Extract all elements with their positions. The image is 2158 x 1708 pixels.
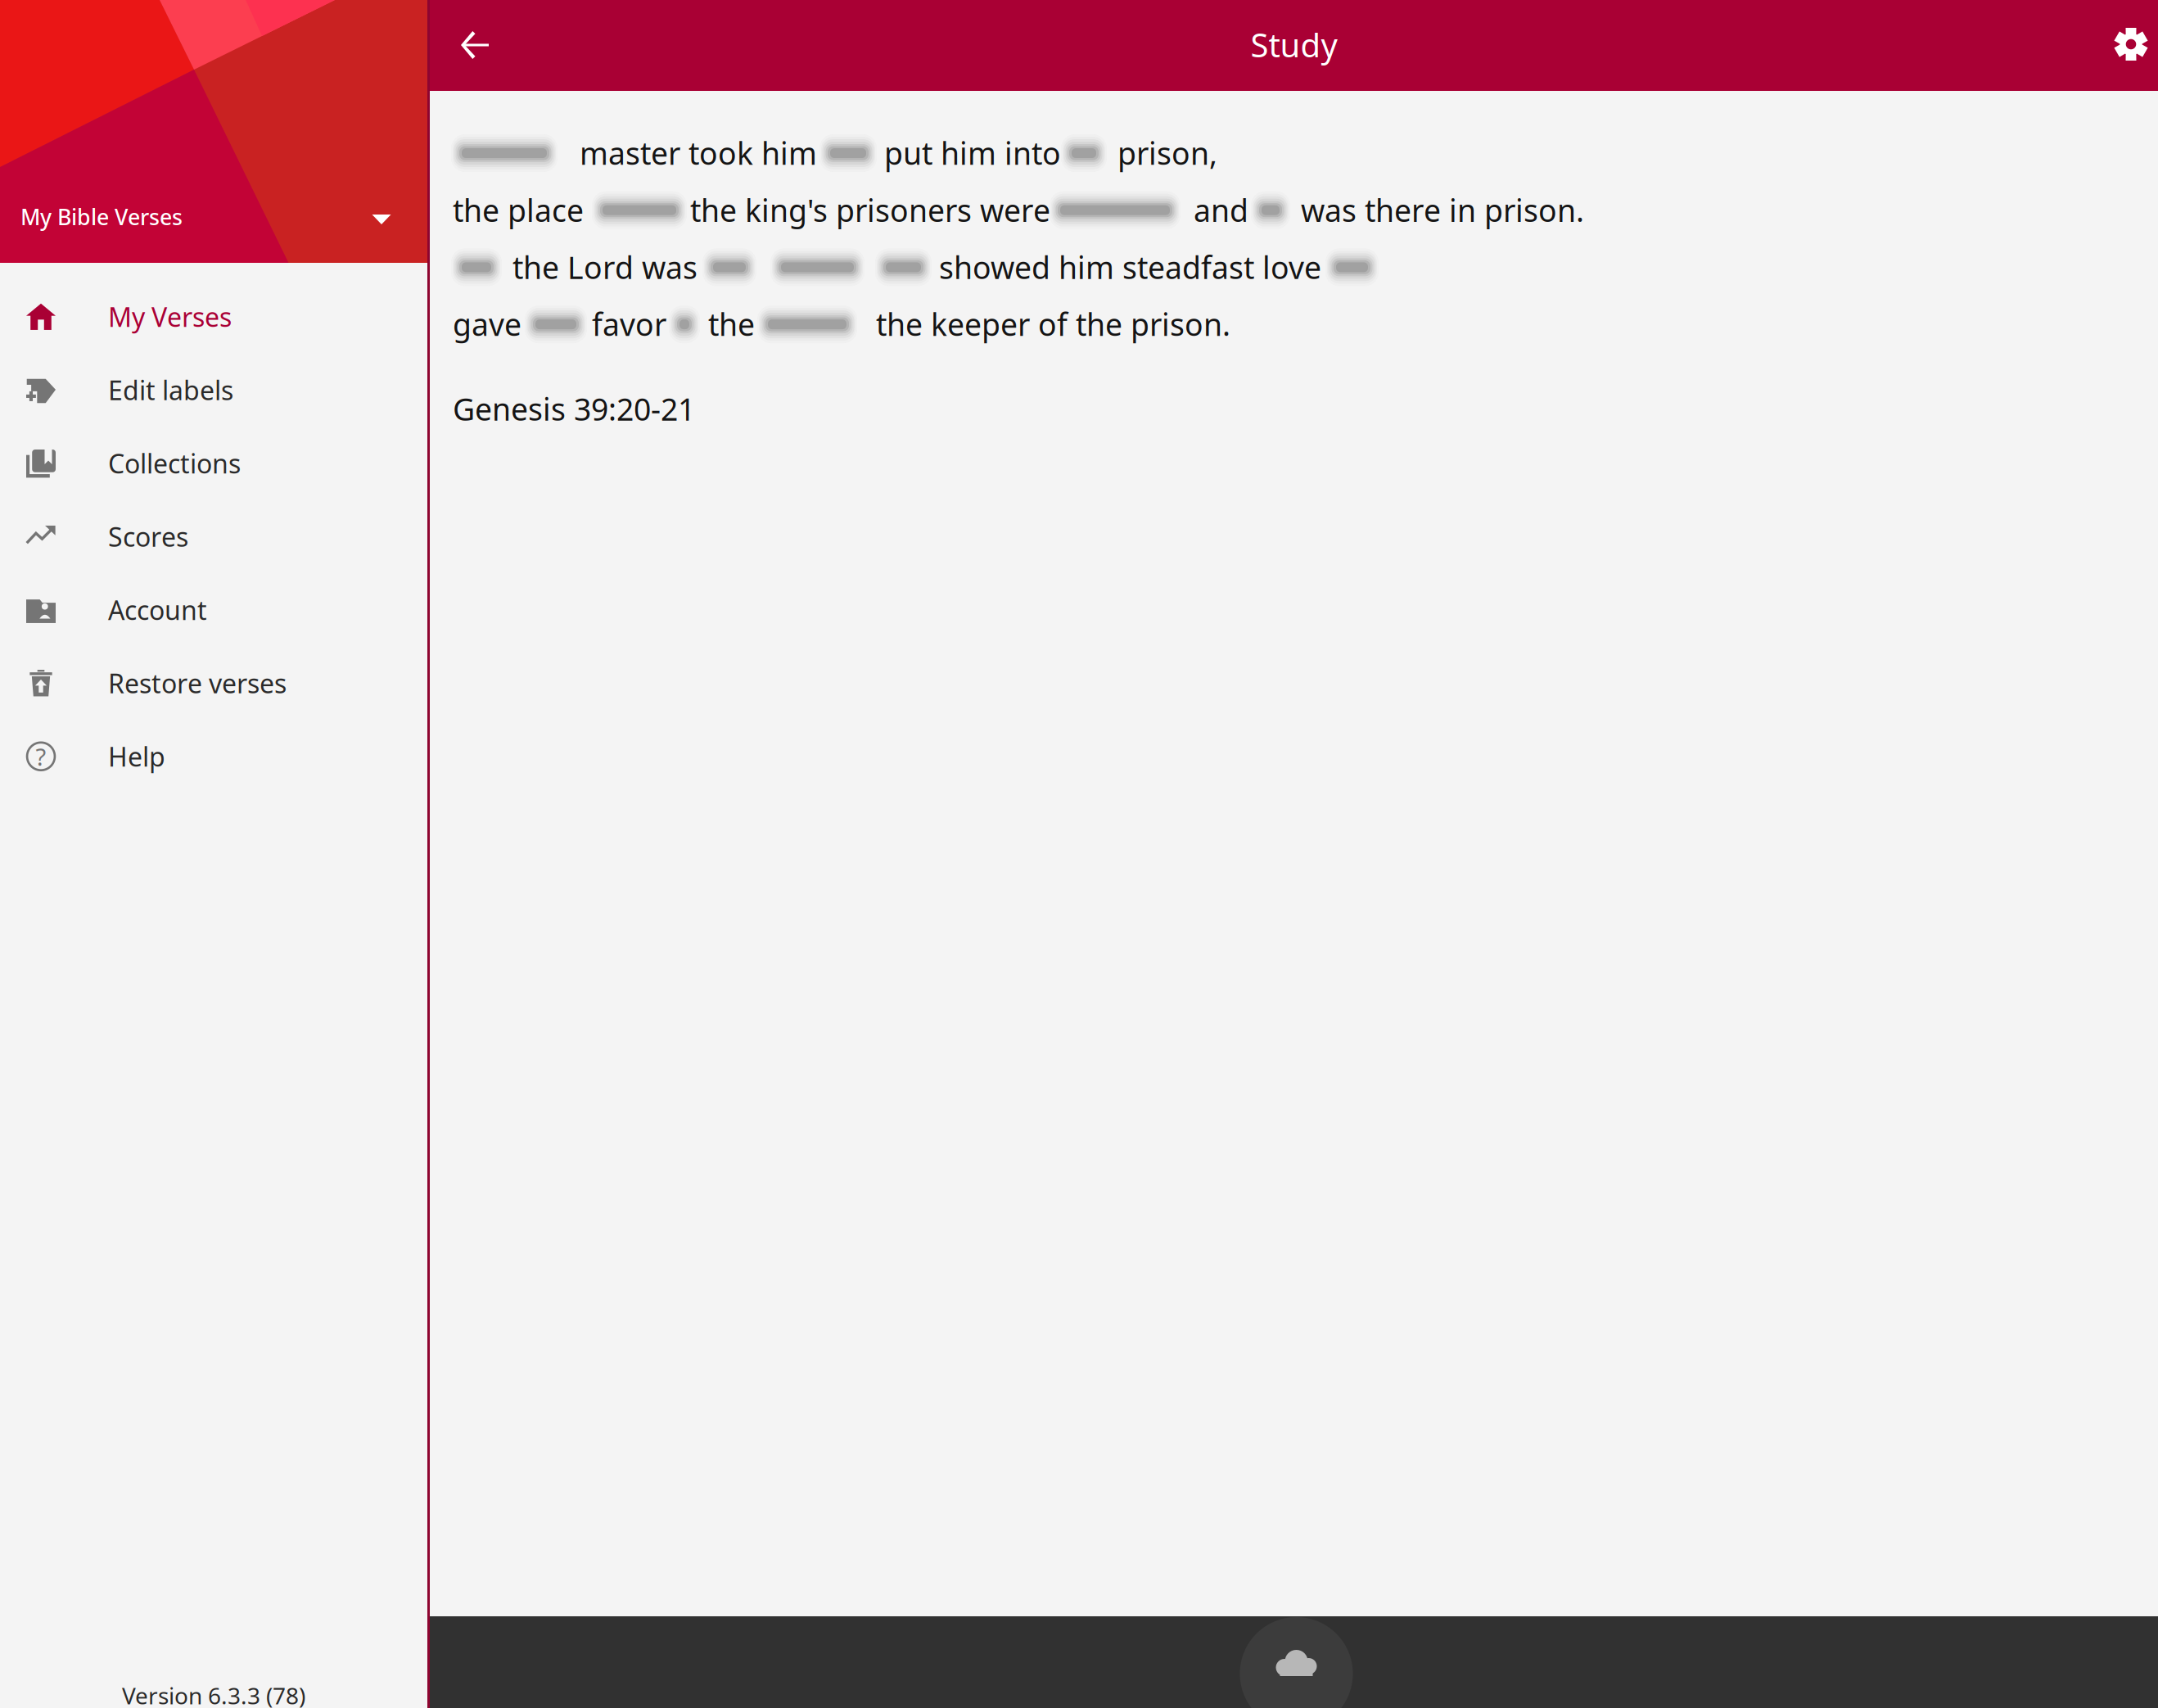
button[interactable]: Restore verses: [0, 646, 427, 720]
staticText: Version 6.3.3 (78): [122, 1680, 305, 1708]
button[interactable]: Sync: [1240, 1616, 1353, 1708]
staticText: ?: [36, 740, 46, 772]
button[interactable]: Back: [448, 18, 502, 72]
button[interactable]: Settings: [2103, 16, 2158, 72]
staticText: Restore verses: [108, 666, 287, 700]
staticText: the Lord was: [512, 247, 698, 287]
button[interactable]: Scores: [0, 500, 427, 573]
button[interactable]: Account: [0, 573, 427, 646]
button[interactable]: My Verses: [0, 280, 427, 353]
staticText: gave: [453, 304, 521, 344]
staticText: Genesis 39:20-21: [453, 389, 695, 429]
staticText: put him into: [884, 133, 1061, 173]
staticText: prison,: [1117, 133, 1217, 173]
staticText: Study: [1251, 23, 1337, 66]
staticText: and: [1194, 190, 1248, 230]
staticText: Collections: [108, 446, 241, 481]
button[interactable]: Edit labels: [0, 353, 427, 427]
button[interactable]: ?: [0, 720, 427, 793]
staticText: Help: [108, 739, 165, 774]
staticText: Edit labels: [108, 373, 233, 407]
staticText: the king's prisoners were: [690, 190, 1050, 230]
staticText: My Verses: [108, 299, 232, 334]
staticText: the place: [453, 190, 584, 230]
staticText: Account: [108, 592, 207, 627]
staticText: was there in prison.: [1301, 190, 1584, 230]
button[interactable]: Collections: [0, 427, 427, 500]
button[interactable]: Switch verse list: [360, 203, 403, 236]
staticText: the keeper of the prison.: [876, 304, 1230, 344]
staticText: master took him: [580, 133, 817, 173]
staticText: Scores: [108, 519, 188, 554]
staticText: showed him steadfast love: [939, 247, 1321, 287]
staticText: My Bible Verses: [20, 202, 183, 231]
staticText: favor: [592, 304, 666, 344]
staticText: the: [708, 304, 755, 344]
